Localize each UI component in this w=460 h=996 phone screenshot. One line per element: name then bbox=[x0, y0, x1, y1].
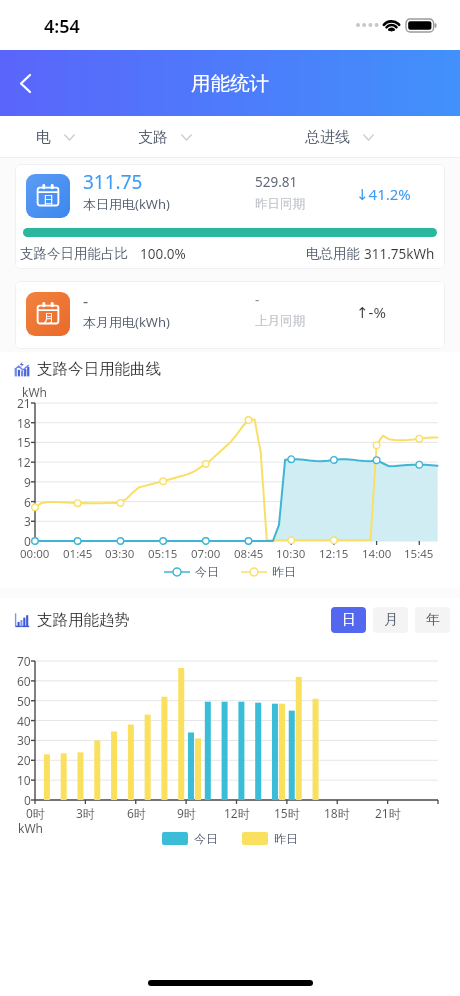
staticText: 100.0% bbox=[140, 245, 186, 263]
button[interactable]: 日 bbox=[331, 607, 366, 633]
staticText: 12:15 bbox=[319, 546, 349, 562]
staticText: 20 bbox=[17, 752, 31, 768]
staticText: 12时 bbox=[224, 805, 250, 821]
staticText: 6 bbox=[24, 494, 31, 510]
staticText: 311.75 bbox=[83, 169, 143, 195]
staticText: 本月用电(kWh) bbox=[83, 313, 170, 331]
staticText: 支路今日用能占比 bbox=[20, 245, 128, 262]
staticText: 21 bbox=[17, 395, 31, 411]
staticText: 4:54 bbox=[44, 14, 80, 39]
staticText: 0时 bbox=[26, 805, 45, 821]
staticText: 14:00 bbox=[362, 546, 392, 562]
staticText: 月 bbox=[384, 611, 398, 629]
button[interactable]: 支路 bbox=[131, 116, 205, 158]
staticText: 支路用能趋势 bbox=[37, 610, 130, 630]
staticText: 01:45 bbox=[63, 546, 93, 562]
button[interactable]: Back bbox=[3, 61, 47, 105]
staticText: 08:45 bbox=[234, 546, 264, 562]
staticText: 0 bbox=[24, 533, 31, 549]
staticText: 03:30 bbox=[105, 546, 135, 562]
staticText: 10:30 bbox=[276, 546, 306, 562]
staticText: 本日用电(kWh) bbox=[83, 195, 170, 213]
staticText: 12 bbox=[17, 454, 31, 470]
staticText: 昨日 bbox=[274, 831, 298, 846]
staticText: 月 bbox=[43, 311, 54, 325]
staticText: 00:00 bbox=[20, 546, 50, 562]
staticText: 今日 bbox=[194, 831, 218, 846]
staticText: 18时 bbox=[324, 805, 350, 821]
staticText: 今日 bbox=[195, 564, 219, 579]
staticText: 6时 bbox=[127, 805, 146, 821]
staticText: 3时 bbox=[76, 805, 95, 821]
staticText: 用能统计 bbox=[191, 71, 269, 96]
staticText: 日 bbox=[43, 193, 54, 207]
staticText: 311.75kWh bbox=[364, 245, 435, 263]
staticText: 日 bbox=[342, 611, 356, 629]
staticText: ↓41.2% bbox=[356, 184, 411, 204]
button[interactable]: 年 bbox=[415, 607, 450, 633]
button[interactable]: 电 bbox=[29, 116, 89, 158]
staticText: 3 bbox=[24, 513, 31, 529]
staticText: 50 bbox=[17, 693, 31, 709]
staticText: ↑-% bbox=[356, 302, 386, 322]
staticText: 10 bbox=[17, 772, 31, 788]
staticText: 支路 bbox=[138, 128, 168, 147]
staticText: 30 bbox=[17, 732, 31, 748]
staticText: 0 bbox=[24, 792, 31, 808]
staticText: 15 bbox=[17, 434, 31, 450]
staticText: 9 bbox=[24, 474, 31, 490]
button[interactable]: 月 bbox=[373, 607, 408, 633]
staticText: 529.81 bbox=[255, 173, 298, 191]
staticText: 15时 bbox=[274, 805, 300, 821]
staticText: 21时 bbox=[375, 805, 401, 821]
staticText: 9时 bbox=[177, 805, 196, 821]
staticText: 昨日 bbox=[272, 564, 296, 579]
staticText: 支路今日用能曲线 bbox=[37, 359, 161, 379]
staticText: 05:15 bbox=[148, 546, 178, 562]
staticText: 60 bbox=[17, 673, 31, 689]
staticText: 总进线 bbox=[305, 128, 350, 147]
staticText: 40 bbox=[17, 713, 31, 729]
staticText: kWh bbox=[18, 820, 43, 836]
staticText: kWh bbox=[22, 384, 47, 400]
staticText: 15:45 bbox=[404, 546, 434, 562]
staticText: 昨日同期 bbox=[255, 196, 305, 212]
button[interactable]: 总进线 bbox=[298, 116, 390, 158]
staticText: 电总用能 bbox=[306, 245, 360, 262]
staticText: 电 bbox=[36, 128, 51, 147]
staticText: 70 bbox=[17, 653, 31, 669]
staticText: 07:00 bbox=[191, 546, 221, 562]
staticText: - bbox=[83, 290, 89, 312]
staticText: - bbox=[255, 291, 260, 309]
staticText: 年 bbox=[426, 611, 440, 629]
staticText: 18 bbox=[17, 415, 31, 431]
staticText: 上月同期 bbox=[255, 313, 305, 329]
